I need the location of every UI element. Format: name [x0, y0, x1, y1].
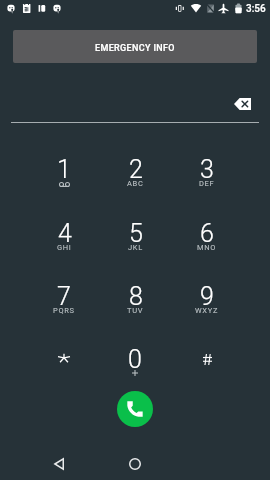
button[interactable]: 6: [171, 219, 243, 267]
button[interactable]: Backspace: [225, 87, 259, 121]
staticText: WXYZ: [195, 306, 219, 315]
staticText: 4: [58, 219, 72, 248]
button[interactable]: 0: [99, 345, 171, 393]
button[interactable]: [171, 345, 243, 393]
staticText: GHI: [57, 243, 72, 252]
staticText: 3: [200, 155, 214, 184]
staticText: 8: [129, 282, 143, 311]
staticText: PQRS: [53, 306, 75, 315]
button[interactable]: EMERGENCY INFO: [13, 30, 257, 63]
staticText: 1: [57, 155, 71, 184]
staticText: DEF: [199, 179, 215, 188]
staticText: ABC: [127, 179, 144, 188]
staticText: 7: [57, 282, 71, 311]
staticText: 3:56: [246, 3, 266, 15]
staticText: MNO: [197, 243, 217, 252]
staticText: 9: [200, 282, 214, 311]
staticText: 0: [128, 345, 142, 374]
staticText: 5: [129, 219, 143, 248]
staticText: 6: [200, 219, 214, 248]
staticText: JKL: [128, 243, 143, 252]
button[interactable]: 2: [99, 155, 171, 203]
staticText: TUV: [127, 306, 144, 315]
button[interactable]: 3: [171, 155, 243, 203]
button[interactable]: Call: [117, 391, 153, 427]
button[interactable]: 9: [171, 282, 243, 330]
button[interactable]: 4: [28, 219, 100, 267]
button[interactable]: [28, 345, 100, 393]
button[interactable]: 8: [99, 282, 171, 330]
button[interactable]: Home: [119, 448, 151, 480]
button[interactable]: 5: [99, 219, 171, 267]
button[interactable]: 1: [28, 155, 100, 203]
staticText: EMERGENCY INFO: [95, 43, 175, 54]
staticText: 2: [129, 155, 143, 184]
button[interactable]: Back: [43, 448, 75, 480]
button[interactable]: 7: [28, 282, 100, 330]
